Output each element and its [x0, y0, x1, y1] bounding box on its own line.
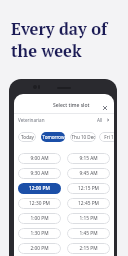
- button[interactable]: Tomorrow: [41, 132, 65, 142]
- staticText: Every day of: [11, 18, 108, 40]
- button[interactable]: 12:45 PM: [67, 198, 110, 209]
- button[interactable]: 1:15 PM: [67, 213, 110, 224]
- button[interactable]: 1:00 PM: [18, 213, 61, 224]
- staticText: 12:45 PM: [78, 200, 99, 207]
- staticText: 9:15 AM: [79, 155, 98, 162]
- button[interactable]: 9:45 AM: [67, 168, 110, 179]
- staticText: Tomorrow: [42, 134, 65, 140]
- staticText: 9:30 AM: [30, 170, 49, 177]
- staticText: 2:00 PM: [30, 245, 49, 252]
- button[interactable]: 9:30 AM: [18, 168, 61, 179]
- staticText: Select time slot: [53, 102, 90, 109]
- staticText: Veterinarian: [18, 117, 45, 123]
- button[interactable]: 9:00 AM: [18, 153, 61, 164]
- button[interactable]: 12:30 PM: [18, 198, 61, 209]
- button[interactable]: Today: [18, 132, 36, 142]
- button[interactable]: Thu 10 Dec: [70, 132, 96, 142]
- staticText: 2:15 PM: [79, 245, 98, 252]
- staticText: 1:45 PM: [79, 230, 98, 237]
- button[interactable]: 1:45 PM: [67, 228, 110, 239]
- staticText: 9:45 AM: [79, 170, 98, 177]
- staticText: All: [97, 117, 103, 123]
- staticText: 1:00 PM: [30, 215, 49, 222]
- staticText: Fri 1: [104, 134, 114, 140]
- button[interactable]: 2:15 PM: [67, 243, 110, 254]
- button[interactable]: 12:15 PM: [67, 183, 110, 194]
- button[interactable]: Veterinarian: [14, 114, 114, 125]
- button[interactable]: Fri 1: [99, 132, 114, 142]
- staticText: the week: [11, 40, 82, 62]
- staticText: 1:30 PM: [30, 230, 49, 237]
- button[interactable]: 1:30 PM: [18, 228, 61, 239]
- button[interactable]: 2:00 PM: [18, 243, 61, 254]
- staticText: 12:15 PM: [78, 185, 99, 192]
- button[interactable]: 9:15 AM: [67, 153, 110, 164]
- button[interactable]: Close: [100, 103, 110, 113]
- button[interactable]: 12:00 PM: [18, 183, 61, 194]
- staticText: Thu 10 Dec: [71, 134, 96, 140]
- staticText: 12:00 PM: [29, 185, 50, 192]
- staticText: Today: [21, 134, 34, 140]
- staticText: 12:30 PM: [29, 200, 50, 207]
- staticText: 9:00 AM: [30, 155, 49, 162]
- staticText: 1:15 PM: [79, 215, 98, 222]
